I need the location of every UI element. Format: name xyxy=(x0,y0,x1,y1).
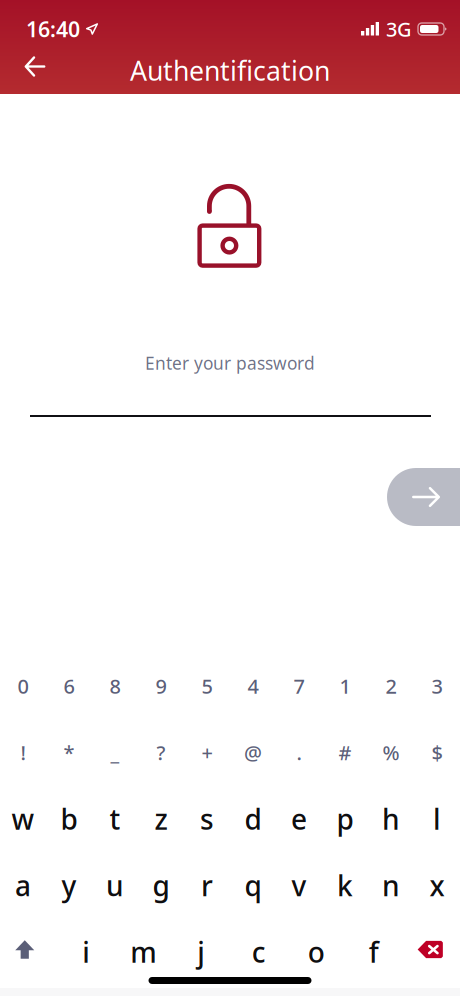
staticText: n xyxy=(382,867,400,904)
staticText: 5 xyxy=(201,673,212,699)
button[interactable]: . xyxy=(276,719,322,786)
button[interactable]: m xyxy=(115,919,172,985)
staticText: v xyxy=(291,867,306,904)
button[interactable]: u xyxy=(92,852,138,919)
button[interactable]: f xyxy=(345,919,402,985)
staticText: 1 xyxy=(339,673,350,699)
button[interactable]: % xyxy=(368,719,414,786)
staticText: + xyxy=(201,739,212,766)
button[interactable]: r xyxy=(184,852,230,919)
staticText: 4 xyxy=(247,673,258,699)
button[interactable]: q xyxy=(230,852,276,919)
staticText: * xyxy=(63,739,74,766)
staticText: 9 xyxy=(155,673,166,699)
staticText: . xyxy=(296,739,301,766)
staticText: q xyxy=(244,867,261,904)
staticText: b xyxy=(60,800,77,838)
staticText: a xyxy=(15,867,31,904)
staticText: 3G xyxy=(386,16,412,42)
button[interactable]: + xyxy=(184,719,230,786)
staticText: s xyxy=(200,800,214,838)
button[interactable]: 8 xyxy=(92,653,138,719)
button[interactable]: a xyxy=(0,852,46,919)
staticText: @ xyxy=(244,739,262,766)
staticText: ? xyxy=(156,739,165,766)
button[interactable]: c xyxy=(230,919,287,985)
button[interactable]: e xyxy=(276,786,322,852)
staticText: g xyxy=(152,867,169,904)
button[interactable]: 7 xyxy=(276,653,322,719)
button[interactable]: ? xyxy=(138,719,184,786)
staticText: 6 xyxy=(63,673,74,699)
button[interactable]: v xyxy=(276,852,322,919)
staticText: r xyxy=(201,867,213,904)
button[interactable]: Shift xyxy=(0,919,57,985)
button[interactable]: 6 xyxy=(46,653,92,719)
staticText: # xyxy=(338,739,351,766)
staticText: k xyxy=(337,867,353,904)
button[interactable]: Continue xyxy=(387,468,460,526)
button[interactable]: j xyxy=(172,919,230,985)
button[interactable]: 1 xyxy=(322,653,368,719)
staticText: 7 xyxy=(293,673,304,699)
button[interactable]: 4 xyxy=(230,653,276,719)
button[interactable]: h xyxy=(368,786,414,852)
staticText: t xyxy=(109,800,120,838)
staticText: _ xyxy=(110,739,119,766)
button[interactable]: 5 xyxy=(184,653,230,719)
staticText: z xyxy=(154,800,167,838)
staticText: i xyxy=(82,933,90,971)
staticText: Authentification xyxy=(130,53,330,88)
button[interactable]: w xyxy=(0,786,46,852)
staticText: f xyxy=(369,933,379,971)
button[interactable]: p xyxy=(322,786,368,852)
staticText: m xyxy=(130,933,157,971)
button[interactable]: x xyxy=(414,852,460,919)
staticText: x xyxy=(429,867,444,904)
staticText: h xyxy=(382,800,400,838)
button[interactable]: ! xyxy=(0,719,46,786)
button[interactable]: @ xyxy=(230,719,276,786)
button[interactable]: * xyxy=(46,719,92,786)
staticText: y xyxy=(61,867,76,904)
button[interactable]: o xyxy=(287,919,345,985)
staticText: w xyxy=(11,800,34,838)
staticText: 8 xyxy=(109,673,120,699)
button[interactable]: 0 xyxy=(0,653,46,719)
button[interactable]: Back xyxy=(11,46,59,94)
staticText: u xyxy=(106,867,124,904)
button[interactable]: n xyxy=(368,852,414,919)
button[interactable]: y xyxy=(46,852,92,919)
staticText: $ xyxy=(431,739,442,766)
button[interactable]: d xyxy=(230,786,276,852)
button[interactable]: 3 xyxy=(414,653,460,719)
button[interactable]: l xyxy=(414,786,460,852)
button[interactable]: 2 xyxy=(368,653,414,719)
button[interactable]: k xyxy=(322,852,368,919)
button[interactable]: i xyxy=(57,919,115,985)
staticText: ! xyxy=(20,739,25,766)
staticText: 16:40 xyxy=(26,15,80,43)
staticText: l xyxy=(433,800,441,838)
staticText: 2 xyxy=(385,673,396,699)
staticText: 3 xyxy=(431,673,442,699)
button[interactable]: z xyxy=(138,786,184,852)
button[interactable]: t xyxy=(92,786,138,852)
button[interactable]: _ xyxy=(92,719,138,786)
staticText: Enter your password xyxy=(145,351,315,374)
button[interactable]: b xyxy=(46,786,92,852)
staticText: d xyxy=(244,800,261,838)
button[interactable]: # xyxy=(322,719,368,786)
button[interactable]: Backspace xyxy=(402,919,460,985)
button[interactable]: 9 xyxy=(138,653,184,719)
staticText: % xyxy=(382,739,399,766)
staticText: p xyxy=(336,800,353,838)
staticText: j xyxy=(197,933,205,971)
staticText: c xyxy=(252,933,266,971)
staticText: o xyxy=(308,933,325,971)
button[interactable]: g xyxy=(138,852,184,919)
button[interactable]: $ xyxy=(414,719,460,786)
staticText: e xyxy=(291,800,307,838)
button[interactable]: s xyxy=(184,786,230,852)
staticText: 0 xyxy=(17,673,28,699)
